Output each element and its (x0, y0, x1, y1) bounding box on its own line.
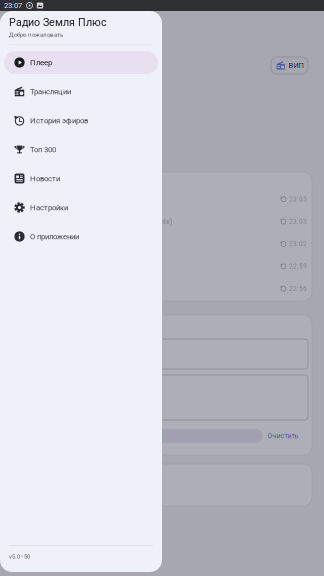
staticText: 23:03 (289, 218, 307, 225)
button[interactable]: Мот — Капкан (Stereo Dance) (12, 255, 312, 278)
staticText: Топ 300 (30, 145, 56, 154)
staticText: 22:56 (289, 285, 307, 293)
button[interactable]: Настройки (0, 196, 162, 219)
button[interactable]: Зомб — Нарисуй мне небо (rmx) (12, 233, 312, 255)
button[interactable]: О приложении (0, 225, 162, 248)
staticText: ВИП (288, 61, 303, 70)
button[interactable]: Нюша — Тебя любить (Dj Vartan remix) (12, 278, 312, 300)
button[interactable]: Плеер (0, 51, 162, 74)
button[interactable]: Artik & Asti — Неделимы (Mike Prado) (12, 188, 312, 210)
button[interactable]: Ёлка — Прованс (DJ Nejtrino & DJ Baur re… (12, 210, 312, 233)
staticText: Радио Земля Плюс (9, 16, 107, 28)
staticText: 23:07 (4, 1, 22, 10)
staticText: 23:05 (289, 195, 307, 203)
staticText: Ёлка — Прованс (DJ Nejtrino & DJ Baur re… (22, 217, 173, 226)
staticText: Новости (30, 174, 60, 183)
staticText: История эфиров (30, 116, 88, 125)
staticText: Трансляции (30, 87, 71, 96)
staticText: v5.0 • 50 (9, 553, 30, 560)
staticText: Добро пожаловать (9, 31, 63, 38)
staticText: 22:59 (289, 263, 307, 270)
button[interactable]: ВИП (271, 57, 308, 74)
staticText: Зомб — Нарисуй мне небо (rmx) (22, 240, 129, 248)
staticText: Очистить (267, 432, 298, 440)
button[interactable]: Топ 300 (0, 138, 162, 161)
button[interactable]: Очистить (260, 429, 306, 443)
button[interactable]: История эфиров (0, 109, 162, 132)
staticText: 23:02 (289, 240, 307, 248)
staticText: Настройки (30, 203, 68, 212)
button[interactable]: Новости (0, 167, 162, 190)
staticText: Плеер (30, 58, 52, 67)
button[interactable]: Трансляции (0, 80, 162, 103)
staticText: О приложении (30, 232, 79, 241)
